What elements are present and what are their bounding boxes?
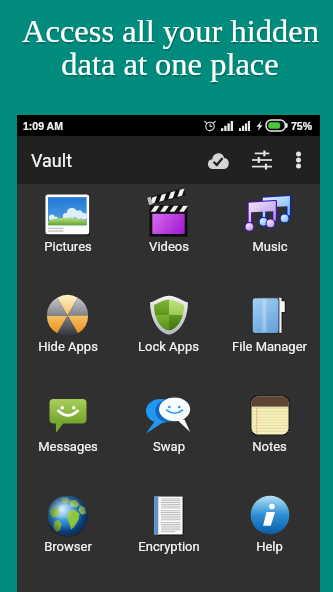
button[interactable]: Settings (244, 142, 280, 178)
button[interactable]: Messages (17, 384, 118, 484)
button[interactable]: Pictures (17, 184, 118, 284)
button[interactable]: Hide Apps (17, 284, 118, 384)
staticText: Pictures (44, 239, 92, 254)
button[interactable]: Notes (219, 384, 320, 484)
button[interactable]: File Manager (219, 284, 320, 384)
staticText: Music (252, 239, 288, 254)
staticText: Messages (38, 439, 98, 454)
staticText: Lock Apps (138, 339, 199, 354)
button[interactable]: Help (219, 484, 320, 584)
staticText: Access all your hidden (23, 15, 320, 51)
staticText: Hide Apps (38, 339, 98, 354)
button[interactable]: Videos (118, 184, 219, 284)
staticText: 75% (291, 120, 313, 132)
button[interactable]: Cloud backup (200, 142, 236, 178)
staticText: Encryption (138, 539, 200, 554)
staticText: Access all your hidden (22, 13, 319, 49)
button[interactable]: Encryption (118, 484, 219, 584)
staticText: Browser (44, 539, 92, 554)
staticText: Videos (149, 239, 189, 254)
button[interactable]: Music (219, 184, 320, 284)
button[interactable]: Lock Apps (118, 284, 219, 384)
staticText: 1:09 AM (23, 120, 63, 132)
staticText: data at one place (62, 48, 280, 84)
button[interactable]: Swap (118, 384, 219, 484)
button[interactable]: More options (282, 144, 314, 176)
staticText: File Manager (232, 339, 307, 354)
staticText: Vault (31, 150, 73, 171)
staticText: Help (256, 539, 283, 554)
staticText: Notes (252, 439, 287, 454)
button[interactable]: Browser (17, 484, 118, 584)
staticText: Swap (153, 439, 185, 454)
staticText: data at one place (61, 46, 279, 82)
